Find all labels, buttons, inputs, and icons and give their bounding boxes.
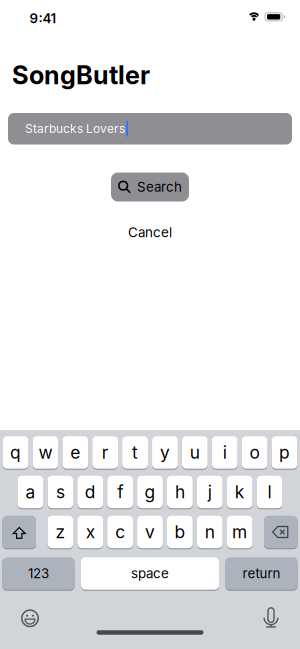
button[interactable]: z	[47, 516, 73, 548]
button[interactable]: 123	[2, 557, 74, 590]
button[interactable]: d	[77, 476, 103, 508]
button[interactable]: Cancel	[128, 225, 172, 240]
staticText: t	[132, 442, 138, 463]
button[interactable]: Emoji	[21, 609, 39, 627]
button[interactable]: l	[257, 476, 282, 508]
staticText: 9:41	[29, 10, 56, 26]
button[interactable]: x	[77, 516, 103, 548]
button[interactable]: Search	[111, 172, 189, 201]
staticText: p	[279, 442, 290, 463]
button[interactable]: y	[152, 436, 178, 469]
staticText: h	[175, 482, 185, 502]
staticText: i	[223, 442, 227, 463]
button[interactable]: e	[62, 436, 88, 469]
staticText: Starbucks Lovers	[25, 122, 125, 136]
staticText: z	[55, 522, 65, 542]
button[interactable]: j	[197, 476, 223, 508]
button[interactable]: b	[167, 516, 193, 548]
button[interactable]: q	[3, 436, 28, 469]
staticText: e	[70, 442, 80, 463]
staticText: k	[235, 482, 245, 502]
staticText: f	[117, 482, 123, 502]
staticText: 123	[28, 566, 49, 581]
staticText: u	[190, 442, 200, 463]
staticText: return	[242, 566, 280, 581]
button[interactable]: w	[33, 436, 58, 469]
button[interactable]: f	[107, 476, 133, 508]
button[interactable]: v	[137, 516, 163, 548]
button[interactable]: i	[212, 436, 238, 469]
button[interactable]: p	[271, 436, 297, 469]
staticText: j	[208, 482, 212, 502]
button[interactable]: a	[18, 476, 43, 508]
button[interactable]: Dictation	[263, 607, 278, 628]
staticText: o	[250, 442, 260, 463]
button[interactable]: t	[122, 436, 148, 469]
button[interactable]: return	[225, 557, 297, 590]
staticText: r	[102, 442, 109, 463]
staticText: y	[160, 442, 170, 463]
button[interactable]: space	[81, 557, 219, 590]
staticText: space	[131, 566, 169, 581]
button[interactable]: c	[107, 516, 133, 548]
staticText: g	[144, 482, 155, 502]
button[interactable]: o	[242, 436, 267, 469]
staticText: a	[25, 482, 35, 502]
staticText: m	[232, 522, 247, 542]
staticText: w	[38, 442, 52, 463]
button[interactable]: m	[227, 516, 252, 548]
button[interactable]: Delete	[264, 516, 297, 548]
staticText: n	[205, 522, 215, 542]
staticText: q	[10, 442, 21, 463]
staticText: b	[174, 522, 185, 542]
button[interactable]: g	[137, 476, 163, 508]
staticText: v	[145, 522, 155, 542]
button[interactable]: s	[47, 476, 73, 508]
button[interactable]: r	[92, 436, 118, 469]
button[interactable]: n	[197, 516, 223, 548]
staticText: l	[267, 482, 271, 502]
staticText: Search	[137, 179, 182, 195]
staticText: x	[86, 522, 95, 542]
staticText: s	[56, 482, 65, 502]
button[interactable]: u	[182, 436, 208, 469]
button[interactable]: k	[227, 476, 252, 508]
button[interactable]: h	[167, 476, 193, 508]
staticText: d	[85, 482, 96, 502]
staticText: Cancel	[128, 225, 172, 240]
button[interactable]: Shift	[2, 516, 36, 548]
staticText: SongButler	[12, 60, 150, 90]
staticText: c	[115, 522, 125, 542]
